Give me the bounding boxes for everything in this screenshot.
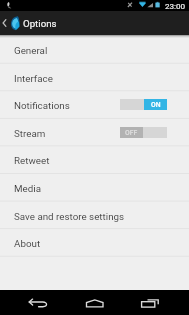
button[interactable]: Interface bbox=[0, 64, 189, 92]
staticText: Stream bbox=[14, 128, 46, 139]
button[interactable]: Media bbox=[0, 174, 189, 202]
staticText: Retweet bbox=[14, 155, 50, 166]
button[interactable]: Navigate up bbox=[0, 11, 9, 35]
staticText: Save and restore settings bbox=[14, 211, 125, 222]
staticText: 23:00 bbox=[165, 1, 186, 10]
staticText: OFF bbox=[125, 129, 138, 137]
staticText: About bbox=[14, 238, 41, 249]
button[interactable]: On bbox=[120, 99, 167, 110]
button[interactable]: Recent apps bbox=[126, 290, 189, 315]
button[interactable]: Save and restore settings bbox=[0, 202, 189, 230]
staticText: Media bbox=[14, 183, 41, 194]
button[interactable]: General bbox=[0, 36, 189, 64]
button[interactable]: Stream bbox=[0, 119, 189, 147]
staticText: Options bbox=[23, 18, 57, 29]
staticText: Interface bbox=[14, 73, 53, 84]
button[interactable]: Off bbox=[120, 127, 167, 138]
button[interactable]: Notifications bbox=[0, 91, 189, 119]
button[interactable]: About bbox=[0, 229, 189, 257]
staticText: General bbox=[14, 45, 48, 56]
button[interactable]: Back bbox=[0, 290, 63, 315]
button[interactable]: Retweet bbox=[0, 146, 189, 174]
staticText: ON bbox=[151, 101, 161, 109]
button[interactable]: Home bbox=[63, 290, 126, 315]
staticText: Notifications bbox=[14, 100, 70, 111]
